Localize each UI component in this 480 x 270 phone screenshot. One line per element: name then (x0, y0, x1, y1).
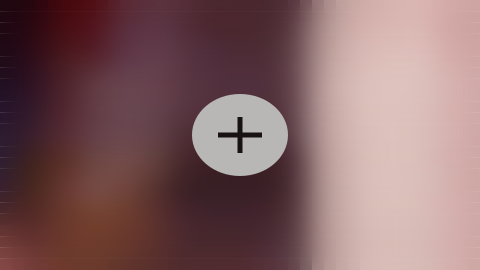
button[interactable]: Add (192, 94, 288, 176)
